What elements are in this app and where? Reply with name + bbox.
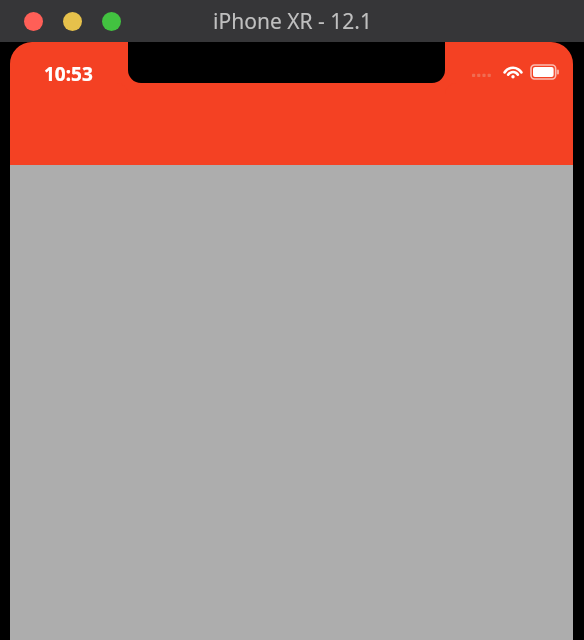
button[interactable]: Close [24, 12, 43, 31]
button[interactable]: Zoom [102, 12, 121, 31]
staticText: iPhone XR - 12.1 [213, 7, 372, 36]
staticText: 10:53 [44, 61, 93, 87]
button[interactable]: Minimize [63, 12, 82, 31]
